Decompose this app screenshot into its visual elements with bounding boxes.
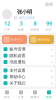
staticText: 3 [19, 20, 22, 27]
button[interactable]: 首页 [0, 89, 14, 100]
button[interactable]: 账号管理 [1, 46, 54, 52]
staticText: > [50, 74, 52, 79]
staticText: 关于我们 [9, 81, 25, 86]
button[interactable]: 消息通知 [1, 59, 54, 65]
staticText: 购物车 [30, 95, 39, 99]
button[interactable]: 会员中心 [2, 35, 27, 44]
staticText: 优惠券 [30, 28, 39, 31]
button[interactable]: Settings [45, 2, 49, 6]
button[interactable]: 8 [28, 20, 42, 31]
button[interactable]: 隐私设置 [1, 52, 54, 59]
staticText: 消息通知 [9, 59, 25, 64]
staticText: > [50, 53, 52, 58]
staticText: ID: 88123456 [14, 16, 35, 20]
button[interactable]: 分类 [14, 89, 28, 100]
staticText: > [50, 68, 52, 73]
staticText: > [50, 59, 52, 65]
staticText: 积分 [46, 28, 52, 31]
button[interactable]: 关于我们 [1, 80, 54, 86]
button[interactable]: 我的 [42, 89, 56, 100]
staticText: > [50, 46, 52, 52]
staticText: 分类 [18, 95, 24, 99]
staticText: 12 [4, 20, 10, 27]
staticText: 账号管理 [9, 47, 25, 52]
button[interactable]: 12 [0, 20, 14, 31]
staticText: 张小明 [17, 9, 32, 15]
staticText: 我的 [46, 95, 52, 99]
button[interactable]: 99 [42, 20, 56, 31]
button[interactable]: 我的钱包 [29, 35, 54, 44]
staticText: 收藏 [18, 28, 24, 31]
button[interactable]: 支付设置 [1, 67, 54, 74]
button[interactable]: 购物车 [28, 89, 42, 100]
staticText: 99 [46, 20, 52, 27]
button[interactable]: 3 [14, 20, 28, 31]
staticText: 隐私设置 [9, 53, 25, 58]
staticText: 支付设置 [9, 68, 25, 73]
staticText: 首页 [4, 95, 10, 99]
staticText: 会员中心 [10, 38, 22, 41]
button[interactable]: Scan [49, 2, 53, 6]
staticText: > [50, 80, 52, 86]
staticText: 帮助中心 [9, 74, 25, 79]
staticText: 8 [33, 20, 36, 27]
button[interactable]: 帮助中心 [1, 74, 54, 80]
staticText: 订单 [4, 28, 10, 31]
staticText: 我的钱包 [37, 38, 49, 41]
